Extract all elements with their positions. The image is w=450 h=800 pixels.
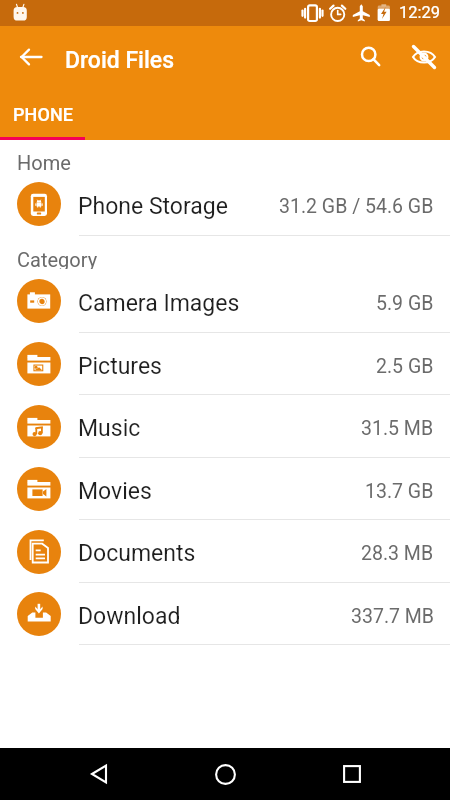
button[interactable]: Movies <box>0 458 450 520</box>
button[interactable]: Search <box>347 33 395 81</box>
button[interactable]: Download <box>0 583 450 645</box>
button[interactable]: Navigate up <box>7 33 55 81</box>
staticText: 5.9 GB <box>376 292 434 315</box>
staticText: Download <box>78 603 351 630</box>
staticText: 2.5 GB <box>376 355 434 378</box>
staticText: Category <box>17 248 98 269</box>
staticText: PHONE <box>13 104 74 125</box>
staticText: Home <box>17 151 71 172</box>
button[interactable]: PHONE <box>0 88 85 140</box>
staticText: 31.2 GB / 54.6 GB <box>279 195 434 218</box>
staticText: Camera Images <box>78 290 376 317</box>
staticText: 12:29 <box>399 3 441 22</box>
staticText: Pictures <box>78 353 376 380</box>
button[interactable]: Pictures <box>0 333 450 395</box>
staticText: Droid Files <box>65 47 174 74</box>
staticText: 31.5 MB <box>361 417 434 440</box>
staticText: Phone Storage <box>78 193 279 220</box>
button[interactable]: Home <box>201 750 249 798</box>
button[interactable]: Documents <box>0 520 450 583</box>
button[interactable]: Phone Storage <box>0 172 450 236</box>
staticText: 28.3 MB <box>361 542 434 565</box>
staticText: 13.7 GB <box>365 480 434 503</box>
button[interactable]: Back <box>76 750 124 798</box>
button[interactable]: Music <box>0 395 450 458</box>
staticText: Music <box>78 415 361 442</box>
staticText: 337.7 MB <box>351 605 434 628</box>
staticText: Movies <box>78 478 365 505</box>
button[interactable]: Show hidden files <box>400 33 448 81</box>
button[interactable]: Camera Images <box>0 269 450 333</box>
staticText: Documents <box>78 540 361 567</box>
button[interactable]: Recent apps <box>328 750 376 798</box>
